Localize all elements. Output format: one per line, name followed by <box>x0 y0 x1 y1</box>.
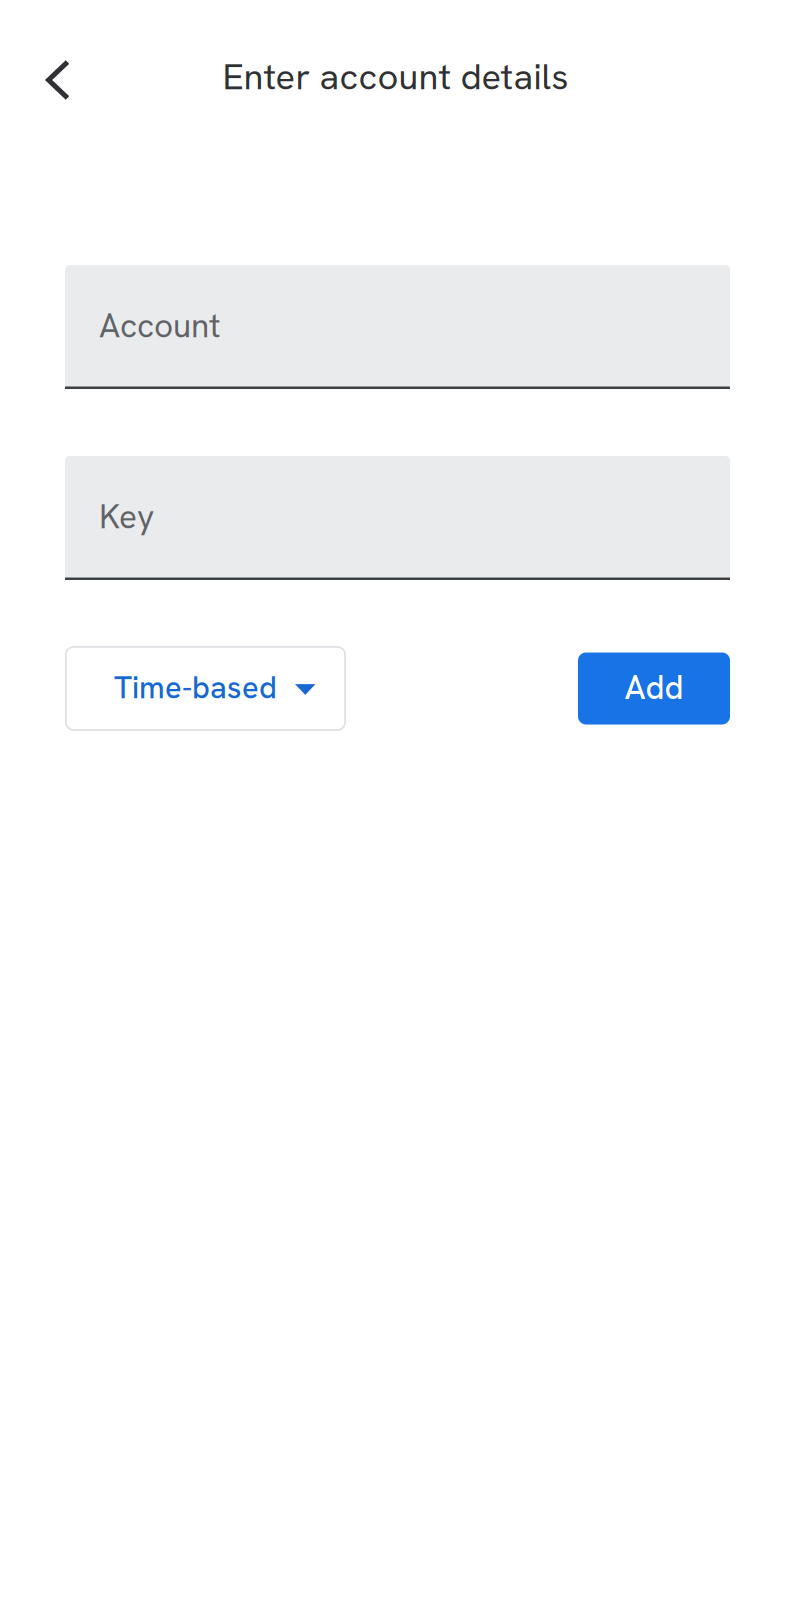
staticText: Time-based <box>114 667 277 707</box>
button[interactable]: Time-based <box>65 646 346 731</box>
staticText: Key <box>99 495 154 538</box>
staticText: Enter account details <box>222 53 568 100</box>
button[interactable]: Add <box>578 652 730 724</box>
staticText: Add <box>624 666 683 709</box>
button[interactable]: Back <box>23 45 93 115</box>
staticText: Account <box>99 304 221 347</box>
